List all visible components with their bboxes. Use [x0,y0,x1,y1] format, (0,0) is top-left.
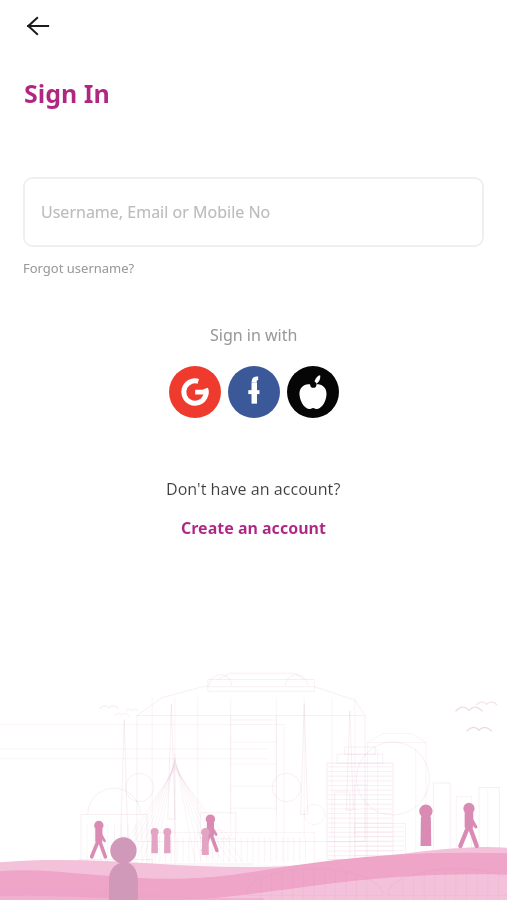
staticText: Forgot username? [23,259,135,277]
staticText: Create an account [181,517,326,539]
button[interactable]: Back [14,2,62,50]
button[interactable]: Forgot username? [23,257,135,279]
staticText: Sign in with [210,324,298,346]
button[interactable]: Sign in with Facebook [228,366,280,418]
staticText: Sign In [24,76,110,110]
staticText: Username, Email or Mobile No [41,201,271,223]
button[interactable]: Sign in with Apple [287,366,339,418]
button[interactable]: Sign in with Google [169,366,221,418]
button[interactable]: Create an account [173,514,334,542]
button[interactable]: Username, Email or Mobile No [23,177,484,247]
staticText: Don't have an account? [166,478,341,500]
